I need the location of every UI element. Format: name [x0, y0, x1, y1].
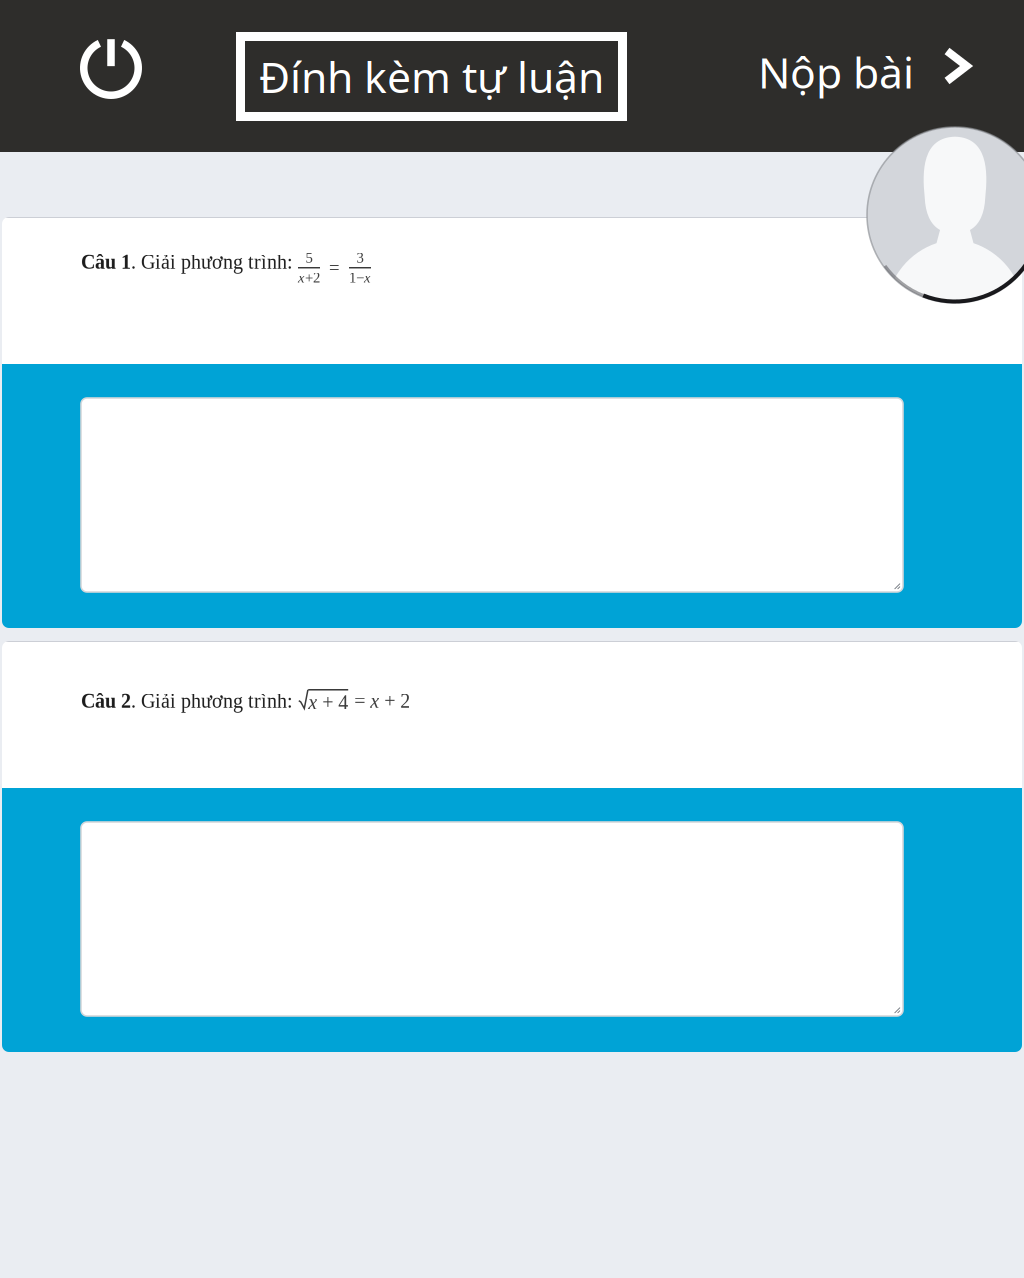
staticText: =	[329, 257, 340, 278]
staticText: x	[364, 269, 371, 286]
staticText: Câu 1	[81, 251, 131, 273]
staticText: Nộp bài	[758, 44, 914, 100]
staticText: +2	[305, 269, 320, 286]
staticText: x	[370, 690, 379, 712]
staticText: +	[379, 690, 400, 712]
staticText: 5	[305, 250, 312, 266]
button[interactable]: Đính kèm tự luận	[236, 32, 627, 121]
staticText: x	[308, 691, 317, 714]
staticText: 1−	[349, 269, 364, 286]
staticText: Câu 2	[81, 690, 131, 712]
staticText: x	[298, 269, 305, 286]
staticText: +	[317, 691, 338, 714]
button[interactable]: Thoát	[63, 20, 159, 116]
staticText: 4	[338, 691, 348, 714]
staticText: . Giải phương trình:	[131, 251, 298, 273]
staticText: =	[354, 690, 370, 712]
button[interactable]: Nộp bài	[758, 24, 972, 120]
staticText: 3	[356, 250, 363, 266]
staticText: 2	[400, 690, 410, 712]
staticText: Đính kèm tự luận	[259, 48, 604, 105]
staticText: . Giải phương trình:	[131, 690, 298, 712]
